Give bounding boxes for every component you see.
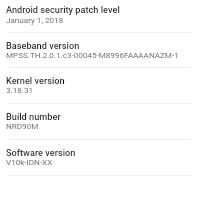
button[interactable]: Software version [0,140,200,176]
staticText: January 1, 2018 [6,15,64,24]
button[interactable]: Build number [0,104,200,140]
button[interactable]: Android security patch level [0,0,200,33]
staticText: Software version [6,147,76,158]
staticText: Baseband version [6,40,80,51]
staticText: V10k-IDN-XX [6,157,53,166]
button[interactable]: Kernel version [0,68,200,104]
staticText: Kernel version [6,75,65,86]
button[interactable]: Baseband version [0,33,200,68]
staticText: MPSS.TH.2.0.1.c3-00045-M8996FAAAANAZM-1 [6,50,179,59]
staticText: Build number [6,111,61,122]
staticText: NRD90M [6,121,39,130]
staticText: 3.18.31 [6,85,34,94]
staticText: Android security patch level [6,4,120,15]
